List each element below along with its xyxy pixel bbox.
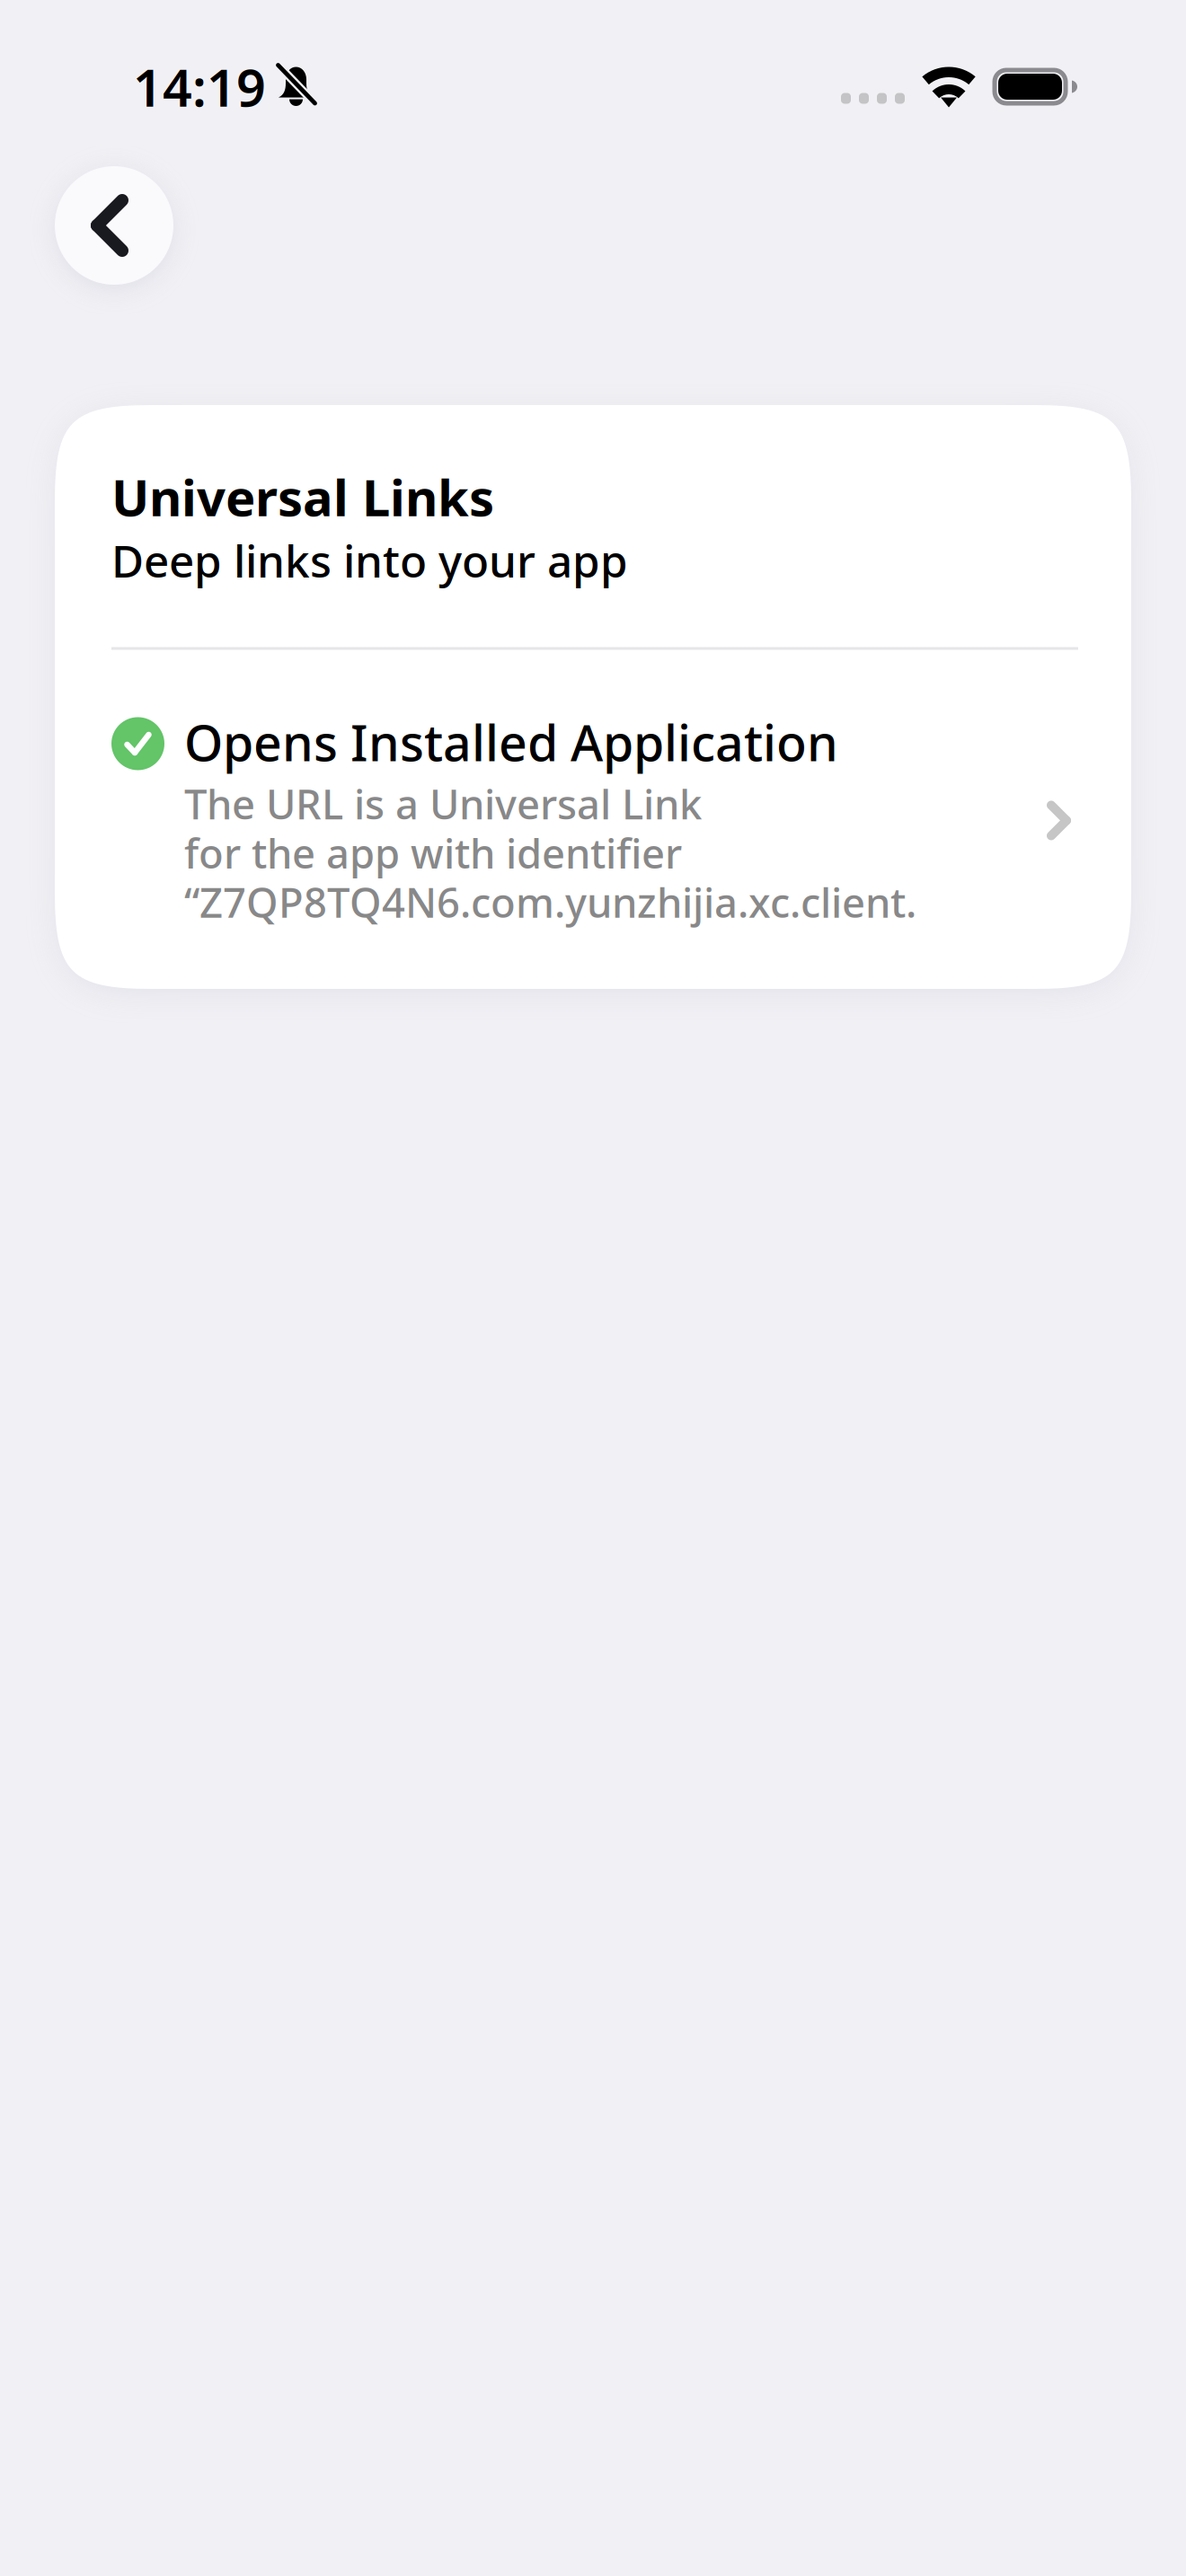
staticText: The URL is a Universal Link for the app … — [184, 776, 916, 930]
staticText: Universal Links — [111, 463, 494, 531]
staticText: 14:19 — [133, 52, 266, 122]
button[interactable]: Opens Installed Application — [111, 650, 1078, 930]
staticText: Deep links into your app — [111, 530, 628, 591]
staticText: Opens Installed Application — [184, 708, 838, 776]
button[interactable]: Back — [55, 166, 173, 285]
